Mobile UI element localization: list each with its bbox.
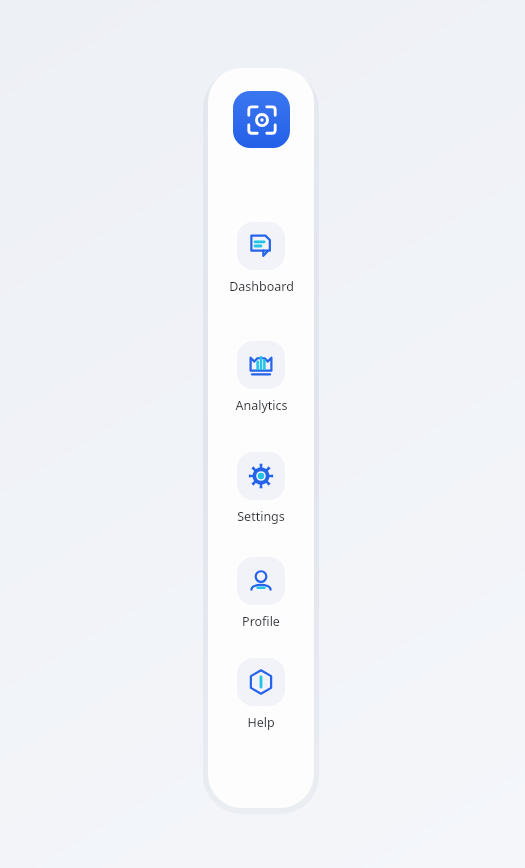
button[interactable]: Profile xyxy=(218,555,304,632)
staticText: Profile xyxy=(242,613,280,630)
button[interactable]: Analytics xyxy=(218,339,304,416)
staticText: Dashboard xyxy=(229,278,294,295)
button[interactable]: Help xyxy=(218,656,304,733)
staticText: Help xyxy=(247,714,275,731)
button[interactable]: Settings xyxy=(218,450,304,527)
staticText: Settings xyxy=(237,508,285,525)
button[interactable]: Dashboard xyxy=(218,220,304,297)
button[interactable]: Scan xyxy=(233,91,290,148)
staticText: Analytics xyxy=(235,397,288,414)
